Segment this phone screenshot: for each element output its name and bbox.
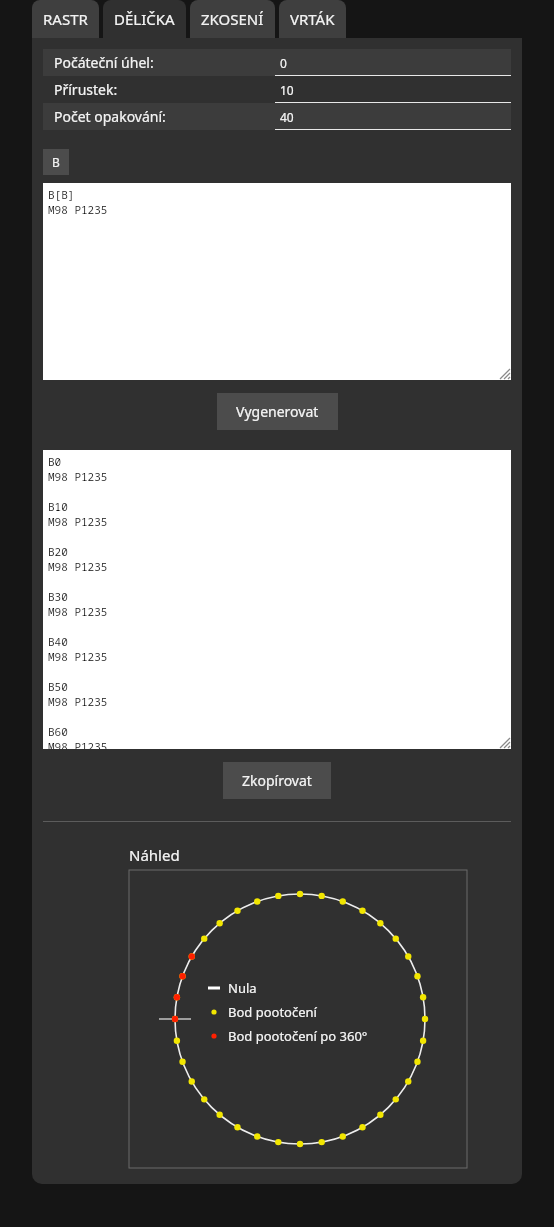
staticText: Počet opakování: xyxy=(54,107,166,126)
staticText: ZKOSENÍ xyxy=(201,9,264,29)
staticText: RASTR xyxy=(43,9,88,29)
staticText: M98 P1235 xyxy=(48,604,108,619)
button[interactable]: Počet opakování: xyxy=(43,103,511,130)
staticText: B30 xyxy=(48,589,68,604)
staticText: B0 xyxy=(48,454,62,469)
staticText: M98 P1235 xyxy=(48,694,108,709)
staticText: Přírustek: xyxy=(54,80,118,99)
staticText: VRTÁK xyxy=(290,9,335,29)
staticText: Zkopírovat xyxy=(242,771,312,790)
staticText: 10 xyxy=(280,82,294,98)
staticText: Vygenerovat xyxy=(236,402,319,421)
button[interactable]: Počáteční úhel: xyxy=(43,49,511,76)
staticText: B xyxy=(52,154,60,170)
staticText: B[B] xyxy=(48,187,75,202)
staticText: M98 P1235 xyxy=(48,559,108,574)
staticText: M98 P1235 xyxy=(48,739,108,749)
staticText: M98 P1235 xyxy=(48,514,108,529)
staticText: B50 xyxy=(48,679,68,694)
staticText: B40 xyxy=(48,634,68,649)
button[interactable]: Přírustek: xyxy=(43,76,511,103)
staticText: Náhled xyxy=(129,845,180,865)
staticText: Počáteční úhel: xyxy=(54,53,154,72)
button[interactable]: Zkopírovat xyxy=(223,762,331,799)
staticText: Nula xyxy=(228,979,257,997)
button[interactable]: VRTÁK xyxy=(279,0,346,38)
staticText: M98 P1235 xyxy=(48,649,108,664)
button[interactable]: B[B] xyxy=(43,183,511,380)
staticText: DĚLIČKA xyxy=(114,9,175,29)
staticText: M98 P1235 xyxy=(48,469,108,484)
staticText: B60 xyxy=(48,724,68,739)
button[interactable]: ZKOSENÍ xyxy=(190,0,275,38)
button[interactable]: B axis xyxy=(43,149,69,175)
staticText: Bod pootočení xyxy=(228,1003,317,1021)
button[interactable]: DĚLIČKA xyxy=(103,0,186,38)
staticText: M98 P1235 xyxy=(48,202,108,217)
button[interactable]: B0 xyxy=(43,450,511,749)
button[interactable]: RASTR xyxy=(32,0,99,38)
button[interactable]: Vygenerovat xyxy=(217,393,338,430)
staticText: B20 xyxy=(48,544,68,559)
staticText: B10 xyxy=(48,499,68,514)
staticText: 40 xyxy=(280,109,294,125)
staticText: 0 xyxy=(280,55,287,71)
staticText: Bod pootočení po 360° xyxy=(228,1027,368,1045)
